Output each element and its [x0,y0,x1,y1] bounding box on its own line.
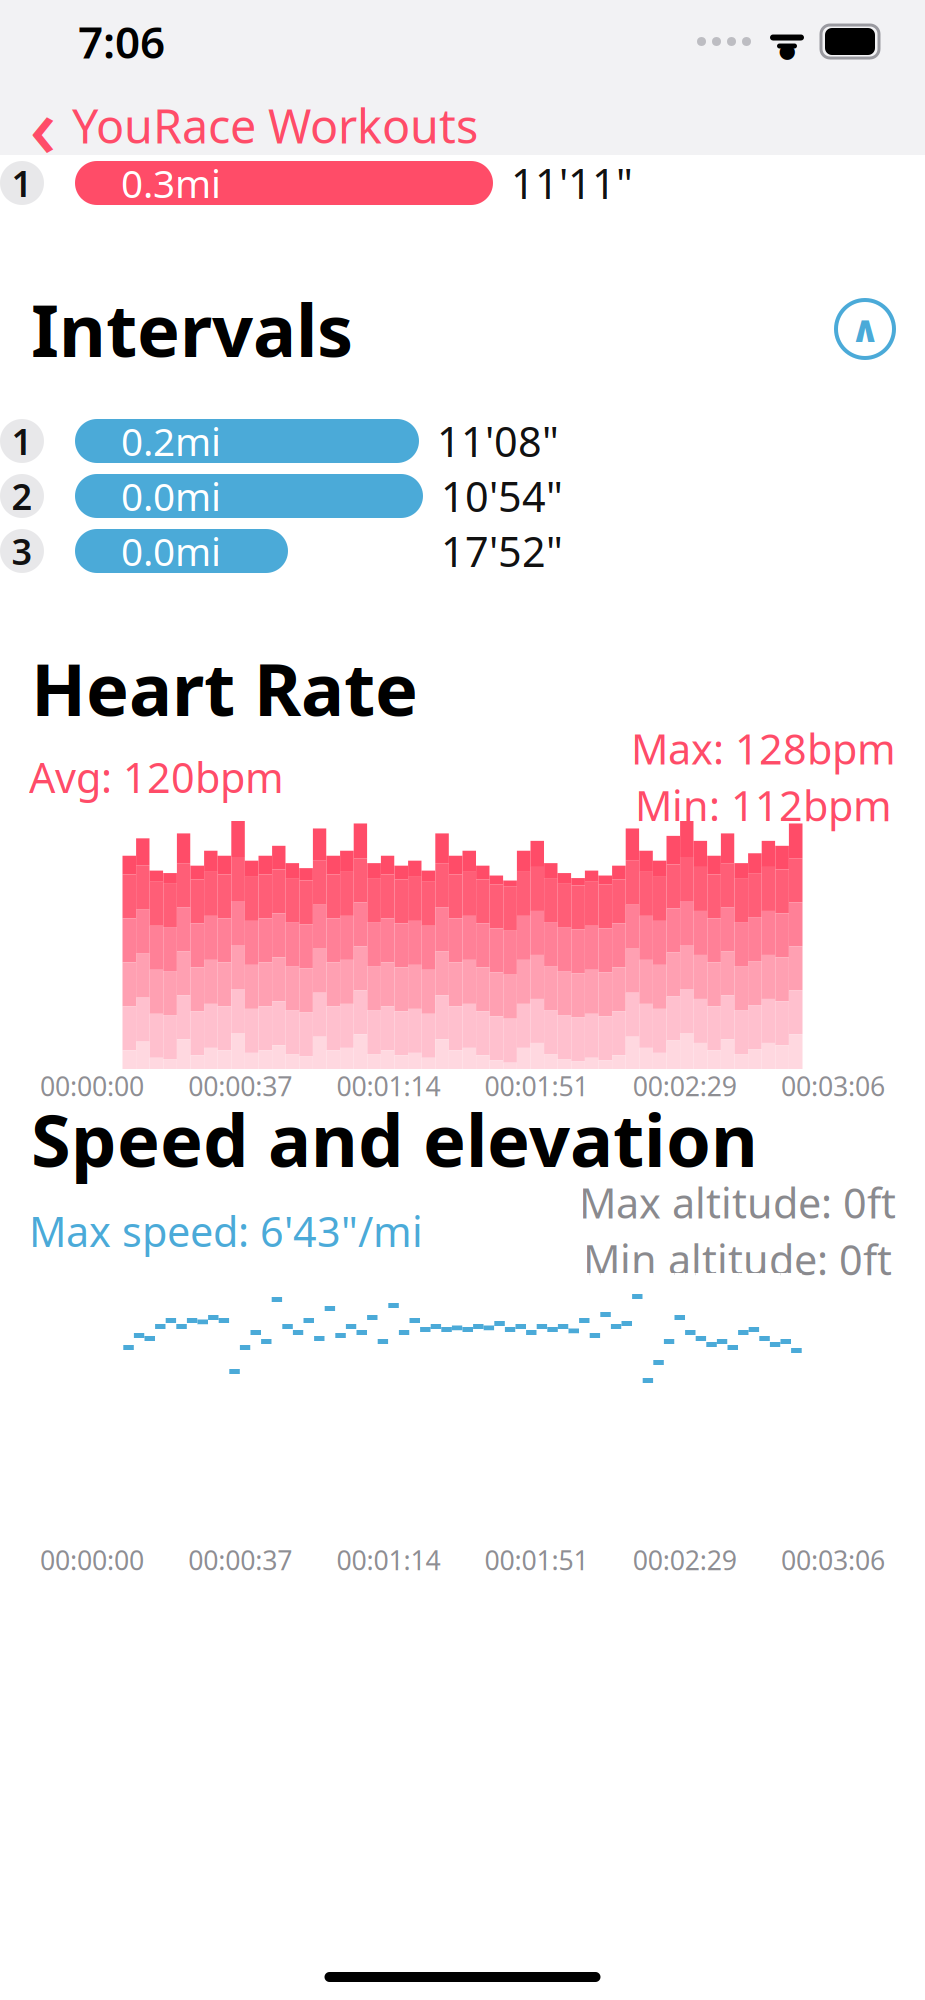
staticText: 7:06 [78,12,165,71]
staticText: 00:01:14 [336,1068,440,1104]
staticText: Max: 128bpm [631,721,896,776]
staticText: Avg: 120bpm [29,749,284,804]
staticText: Max speed: 6'43"/mi [29,1203,423,1258]
staticText: 00:00:00 [40,1068,144,1104]
staticText: 2 [11,472,32,520]
staticText: ‹ [29,71,56,180]
staticText: 0.3mi [121,157,221,209]
staticText: 17'52" [441,524,563,578]
staticText: 00:00:00 [40,1542,144,1578]
staticText: 3 [11,527,32,575]
staticText: ∧ [850,308,880,350]
staticText: YouRace Workouts [72,94,478,156]
staticText: 11'08" [437,414,559,468]
staticText: 1 [11,159,32,207]
staticText: 0.2mi [121,415,221,467]
staticText: Min altitude: 0ft [583,1232,892,1287]
staticText: Intervals [31,281,353,377]
button[interactable]: Collapse intervals [836,300,894,358]
staticText: 00:01:51 [485,1542,589,1578]
staticText: 00:02:29 [633,1542,737,1578]
staticText: 10'54" [441,469,563,523]
staticText: 11'11" [511,156,633,210]
button[interactable]: Back to YouRace Workouts [0,89,925,161]
staticText: Speed and elevation [31,1091,758,1187]
staticText: 00:03:06 [781,1068,885,1104]
staticText: 0.0mi [121,470,221,522]
staticText: 00:00:37 [188,1542,292,1578]
staticText: 00:00:37 [188,1068,292,1104]
staticText: ● [778,39,795,62]
staticText: 1 [11,417,32,465]
staticText: Max altitude: 0ft [579,1175,896,1230]
staticText: 00:01:51 [485,1068,589,1104]
staticText: 00:02:29 [633,1068,737,1104]
staticText: 00:03:06 [781,1542,885,1578]
staticText: Heart Rate [31,640,418,736]
staticText: 0.0mi [121,525,221,577]
staticText: Min: 112bpm [635,778,892,833]
staticText: 00:01:14 [336,1542,440,1578]
